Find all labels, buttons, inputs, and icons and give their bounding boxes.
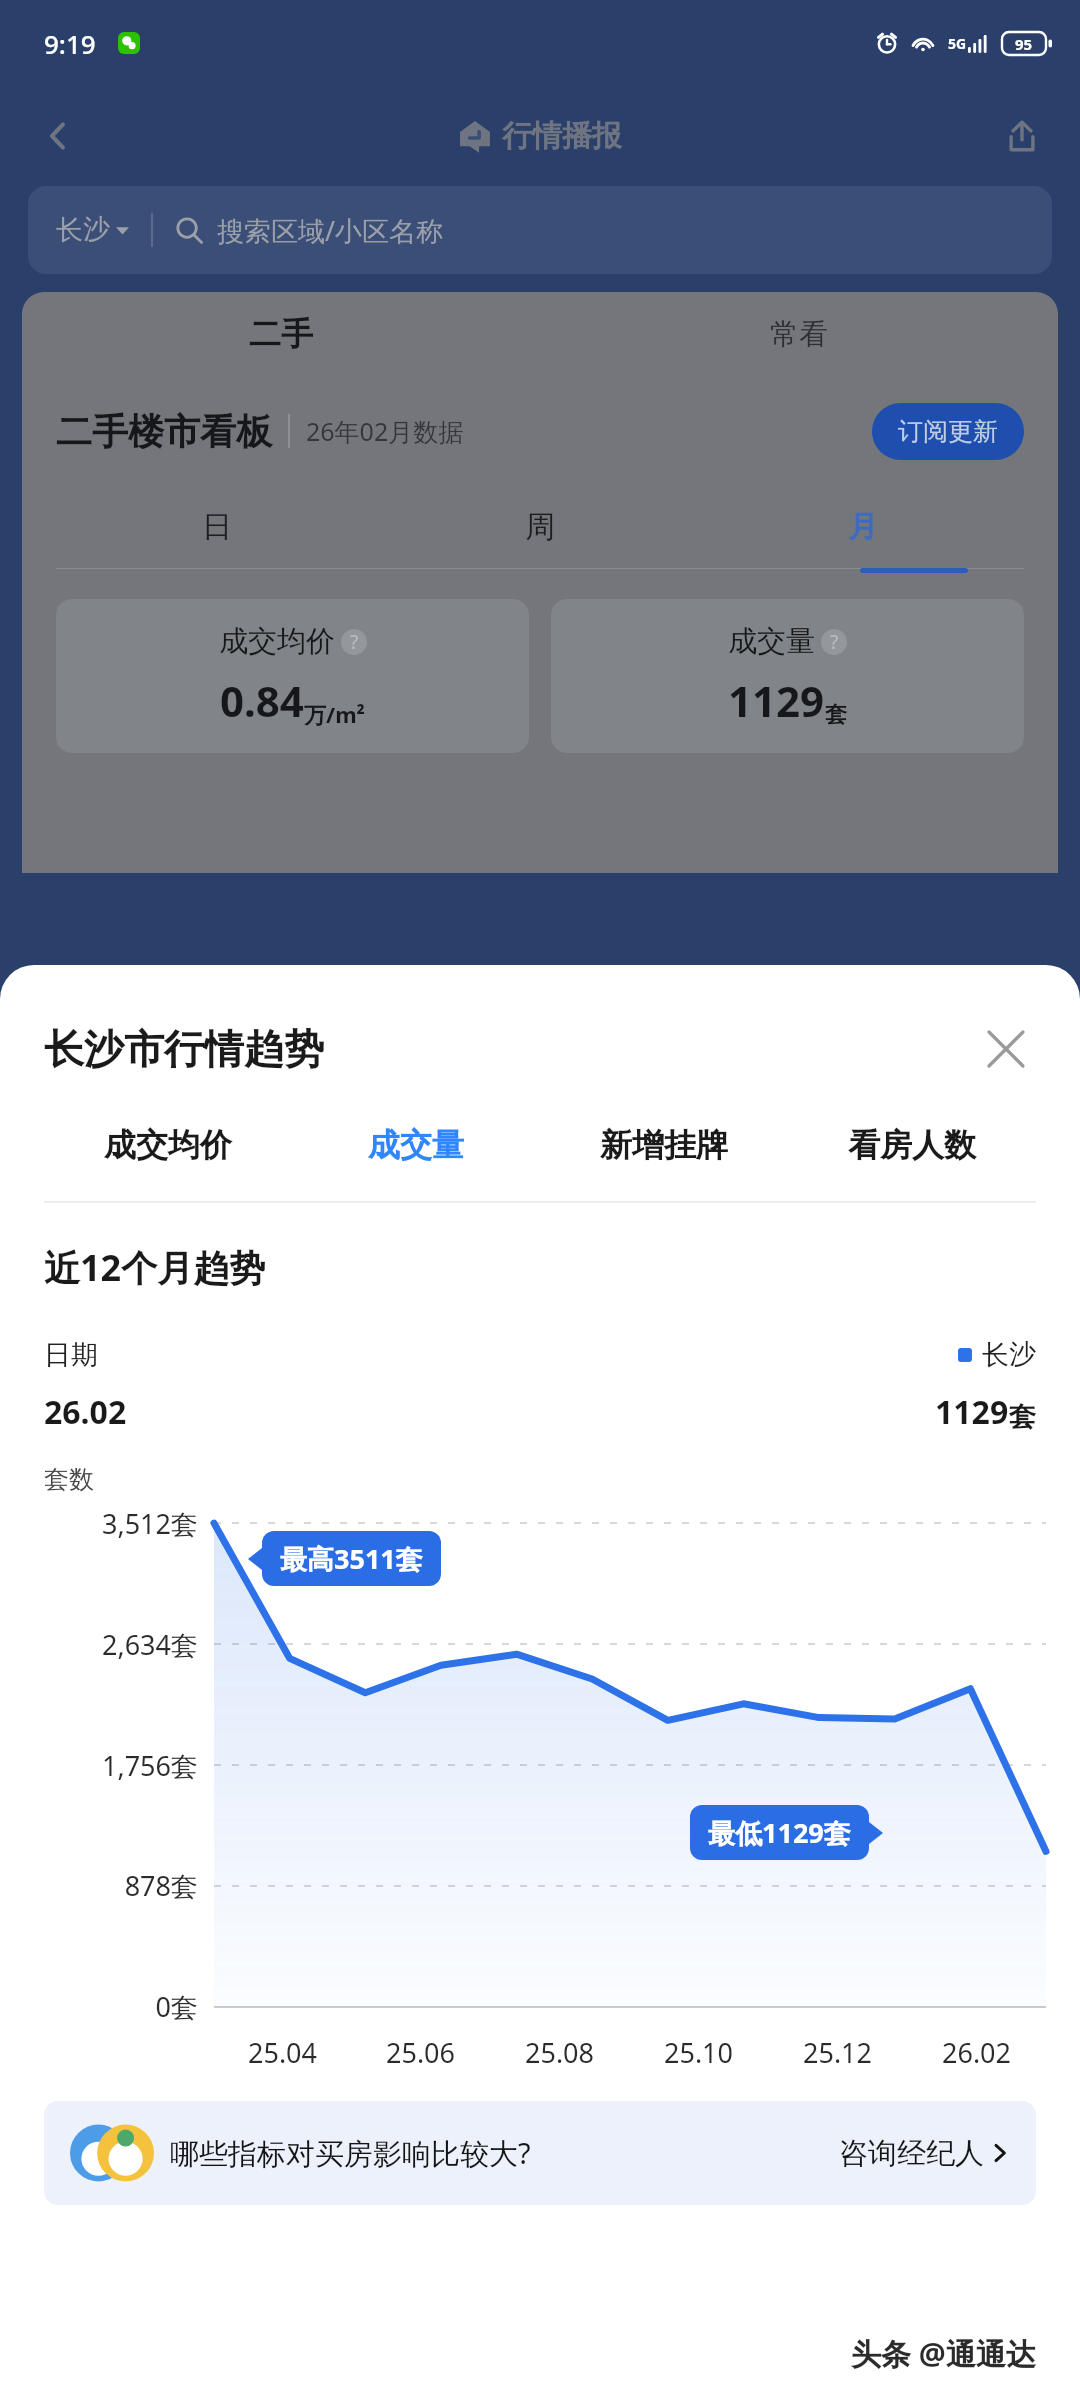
staticText: 搜索区域/小区名称	[217, 212, 444, 249]
staticText: 2,634套	[30, 1626, 198, 1663]
staticText: 26.02	[44, 1390, 127, 1434]
staticText: 长沙市行情趋势	[44, 1024, 324, 1074]
button[interactable]: Share	[992, 106, 1052, 166]
staticText: 878套	[30, 1867, 198, 1904]
staticText: 行情播报	[502, 117, 622, 155]
staticText: 常看	[770, 316, 828, 353]
staticText: 订阅更新	[898, 416, 998, 447]
button[interactable]: 成交量	[292, 1111, 540, 1179]
staticText: 日	[202, 508, 232, 546]
button[interactable]: 成交均价	[44, 1111, 292, 1179]
button[interactable]: 成交量	[551, 599, 1024, 753]
staticText: 25.06	[386, 2034, 456, 2071]
button[interactable]: 订阅更新	[872, 403, 1024, 460]
staticText: 新增挂牌	[600, 1125, 728, 1165]
staticText: 二手楼市看板	[56, 409, 272, 454]
button[interactable]: Close	[976, 1019, 1036, 1079]
staticText: 咨询经纪人	[839, 2135, 984, 2172]
staticText: 套数	[44, 1464, 94, 1495]
button[interactable]: 月	[701, 486, 1024, 568]
staticText: 万/m²	[304, 699, 365, 729]
staticText: 5G	[948, 34, 967, 53]
button[interactable]: 看房人数	[788, 1111, 1036, 1179]
staticText: 月	[848, 508, 878, 546]
button[interactable]: 成交均价	[56, 599, 529, 753]
staticText: 哪些指标对买房影响比较大?	[170, 2133, 531, 2173]
staticText: 成交均价	[104, 1125, 232, 1165]
staticText: 看房人数	[848, 1125, 976, 1165]
staticText: ?	[830, 629, 839, 655]
staticText: 成交量	[368, 1125, 464, 1165]
staticText: 近12个月趋势	[44, 1243, 266, 1292]
staticText: 最低1129套	[708, 1814, 851, 1851]
staticText: 9:19	[44, 26, 96, 61]
staticText: 成交均价	[219, 623, 335, 660]
staticText: 3,512套	[30, 1505, 198, 1542]
staticText: 25.04	[248, 2034, 318, 2071]
staticText: 日期	[44, 1338, 98, 1372]
staticText: 0套	[30, 1988, 198, 2025]
staticText: 成交量	[728, 623, 815, 660]
button[interactable]: 日	[56, 486, 378, 568]
staticText: 头条 @通通达	[851, 2333, 1036, 2374]
staticText: 26年02月数据	[306, 414, 464, 448]
button[interactable]: 常看	[540, 292, 1058, 376]
staticText: 25.12	[803, 2034, 873, 2071]
staticText: 1,756套	[30, 1747, 198, 1784]
staticText: 25.10	[664, 2034, 734, 2071]
staticText: 26.02	[942, 2034, 1012, 2071]
staticText: 最高3511套	[280, 1540, 423, 1577]
staticText: 套	[825, 701, 847, 729]
button[interactable]: 哪些指标对买房影响比较大?	[44, 2101, 1036, 2205]
staticText: 25.08	[525, 2034, 595, 2071]
staticText: 95	[1015, 34, 1033, 54]
button[interactable]: 长沙	[28, 186, 1052, 274]
button[interactable]: 二手	[22, 292, 540, 376]
staticText: 套	[1009, 1400, 1036, 1434]
button[interactable]: 周	[378, 486, 701, 568]
staticText: 长沙	[56, 213, 110, 247]
staticText: 二手	[249, 314, 313, 354]
staticText: 0.84	[220, 672, 304, 729]
staticText: 1129	[935, 1390, 1009, 1434]
button[interactable]: Back	[28, 106, 88, 166]
button[interactable]: 新增挂牌	[540, 1111, 788, 1179]
staticText: 周	[525, 508, 555, 546]
staticText: 长沙	[982, 1338, 1036, 1372]
staticText: ?	[350, 629, 359, 655]
staticText: 1129	[728, 672, 825, 729]
